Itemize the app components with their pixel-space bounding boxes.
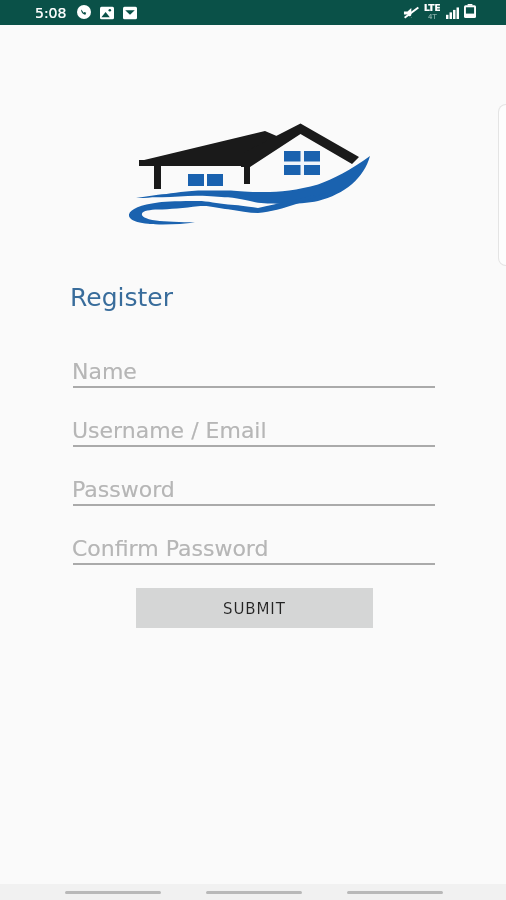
button[interactable]: Password bbox=[73, 464, 435, 506]
staticText: 4T bbox=[428, 13, 437, 21]
staticText: LTE bbox=[424, 3, 441, 13]
staticText: Password bbox=[72, 477, 175, 503]
staticText: Name bbox=[72, 359, 137, 385]
staticText: Register bbox=[70, 283, 173, 312]
staticText: SUBMIT bbox=[223, 600, 286, 617]
staticText: Confirm Password bbox=[72, 536, 269, 562]
button[interactable]: Back bbox=[333, 884, 457, 900]
staticText: Username / Email bbox=[72, 418, 267, 444]
staticText: 5:08 bbox=[35, 5, 67, 21]
button[interactable]: Recents bbox=[51, 884, 175, 900]
button[interactable]: Confirm Password bbox=[73, 523, 435, 565]
button[interactable]: Name bbox=[73, 346, 435, 388]
button[interactable]: Username / Email bbox=[73, 405, 435, 447]
button[interactable]: Home bbox=[192, 884, 316, 900]
button[interactable]: Edge panel bbox=[498, 104, 506, 266]
button[interactable]: SUBMIT bbox=[136, 588, 373, 628]
